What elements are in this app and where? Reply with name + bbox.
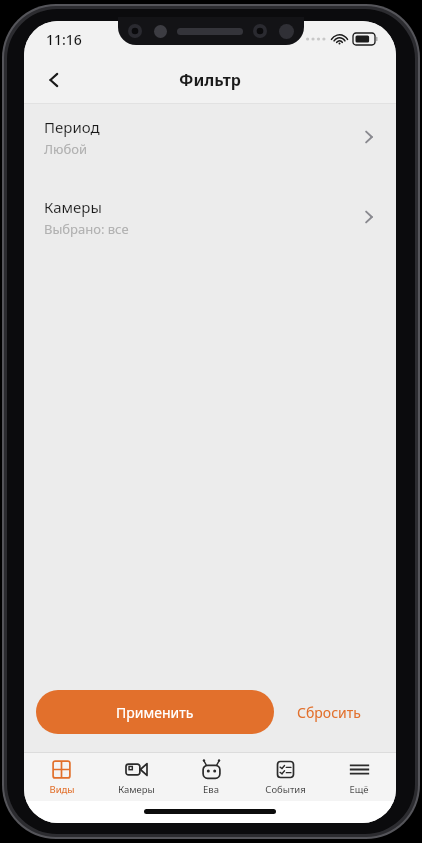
button[interactable]: Применить	[36, 690, 274, 734]
staticText: Ещё	[349, 783, 369, 796]
button[interactable]: Ева	[174, 753, 248, 801]
staticText: Ева	[203, 783, 219, 796]
staticText: Выбрано: все	[44, 220, 129, 238]
staticText: Виды	[49, 783, 75, 796]
staticText: Период	[44, 117, 100, 137]
staticText: Сбросить	[297, 703, 361, 722]
staticText: Любой	[44, 140, 88, 158]
staticText: Камеры	[44, 197, 102, 217]
button[interactable]: Ещё	[322, 753, 396, 801]
staticText: События	[265, 783, 306, 796]
staticText: Применить	[116, 703, 194, 722]
staticText: Камеры	[118, 783, 155, 796]
button[interactable]: Виды	[24, 753, 99, 801]
button[interactable]: Back	[34, 60, 74, 100]
button[interactable]: Камеры	[99, 753, 174, 801]
button[interactable]: События	[248, 753, 322, 801]
button[interactable]: Сбросить	[274, 690, 384, 734]
button[interactable]: Камеры	[24, 194, 396, 240]
button[interactable]: Период	[24, 114, 396, 160]
staticText: 11:16	[46, 30, 82, 49]
staticText: Фильтр	[179, 69, 241, 91]
